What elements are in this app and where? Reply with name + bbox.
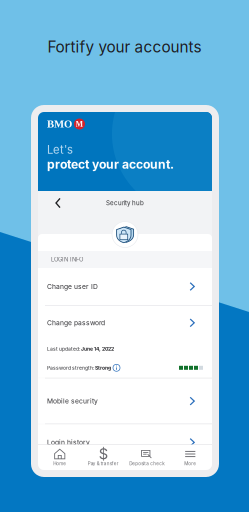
staticText: LOGIN INFO	[51, 256, 83, 263]
staticText: Deposit a check	[129, 461, 164, 466]
staticText: Mobile security	[47, 397, 98, 405]
button[interactable]: More	[168, 445, 212, 470]
staticText: BMO	[47, 118, 72, 130]
button[interactable]: Change password	[38, 306, 212, 340]
button[interactable]: $	[81, 445, 125, 470]
staticText: Home	[53, 461, 66, 466]
button[interactable]: Password strength info	[111, 364, 120, 371]
staticText: Change user ID	[47, 282, 98, 291]
staticText: Strong	[95, 365, 111, 371]
button[interactable]: Login history	[38, 424, 212, 460]
staticText: Let's	[47, 143, 73, 157]
staticText: $	[99, 445, 108, 463]
button[interactable]: Back	[47, 194, 69, 212]
staticText: More	[184, 461, 196, 466]
staticText: protect your account.	[47, 157, 174, 172]
staticText: Last updated:	[47, 346, 81, 352]
button[interactable]: Home	[38, 445, 81, 470]
staticText: M	[75, 120, 83, 128]
staticText: Change password	[47, 319, 105, 327]
button[interactable]: Mobile security	[38, 379, 212, 424]
staticText: Fortify your accounts	[47, 38, 201, 56]
staticText: Pay & transfer	[88, 461, 119, 466]
staticText: Password strength:	[47, 365, 95, 371]
button[interactable]: Deposit a check	[125, 445, 168, 470]
staticText: June 14, 2022	[81, 346, 114, 352]
button[interactable]: Change user ID	[38, 268, 212, 305]
staticText: Security hub	[106, 199, 144, 207]
staticText: Login history	[47, 438, 90, 446]
